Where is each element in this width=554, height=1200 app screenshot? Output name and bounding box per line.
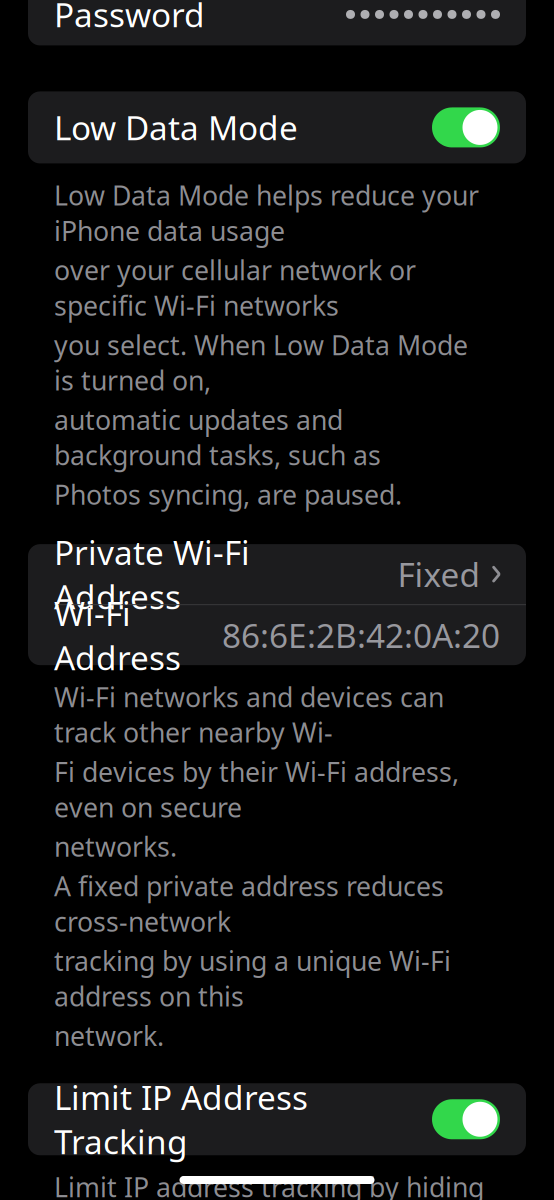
staticText: Fi devices by their Wi-Fi address, even … — [54, 754, 459, 825]
staticText: Limit IP Address Tracking — [54, 1075, 308, 1163]
staticText: Low Data Mode helps reduce your iPhone d… — [54, 177, 479, 248]
staticText: tracking by using a unique Wi-Fi address… — [54, 943, 451, 1014]
staticText: you select. When Low Data Mode is turned… — [54, 327, 468, 398]
button[interactable]: Password — [28, 0, 526, 45]
button[interactable]: Limit IP Address Tracking — [28, 1083, 526, 1155]
staticText: Wi-Fi networks and devices can track oth… — [54, 679, 444, 750]
button[interactable]: Wi-Fi Address — [28, 605, 526, 665]
staticText: Password — [54, 0, 205, 37]
button[interactable]: Private Wi-Fi Address — [28, 544, 526, 604]
staticText: Fixed — [397, 552, 480, 596]
staticText: Private Wi-Fi Address — [54, 530, 250, 618]
staticText: Limit IP address tracking by hiding your… — [54, 1169, 484, 1200]
button[interactable]: Low Data Mode — [28, 91, 526, 163]
staticText: Wi-Fi Address — [54, 591, 181, 679]
staticText: over your cellular network or specific W… — [54, 252, 416, 323]
staticText: Photos syncing, are paused. — [54, 477, 402, 512]
staticText: Low Data Mode — [54, 105, 298, 150]
staticText: automatic updates and background tasks, … — [54, 402, 381, 473]
staticText: networks. — [54, 829, 177, 864]
staticText: network. — [54, 1018, 164, 1053]
staticText: 86:6E:2B:42:0A:20 — [222, 613, 500, 657]
staticText: A fixed private address reduces cross-ne… — [54, 868, 444, 939]
